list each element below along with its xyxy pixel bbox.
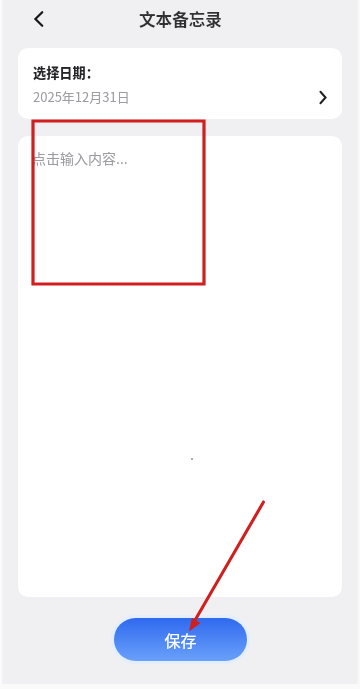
staticText: 文本备忘录	[139, 7, 222, 31]
staticText: 点击输入内容...	[32, 148, 128, 168]
staticText: 选择日期：	[33, 63, 99, 82]
button[interactable]: 保存	[114, 618, 247, 661]
button[interactable]: Back	[22, 2, 56, 36]
button[interactable]: 点击输入内容...	[18, 136, 342, 597]
button[interactable]: 选择日期：	[18, 48, 342, 119]
staticText: 保存	[164, 628, 197, 651]
staticText: 2025年12月31日	[33, 87, 130, 106]
